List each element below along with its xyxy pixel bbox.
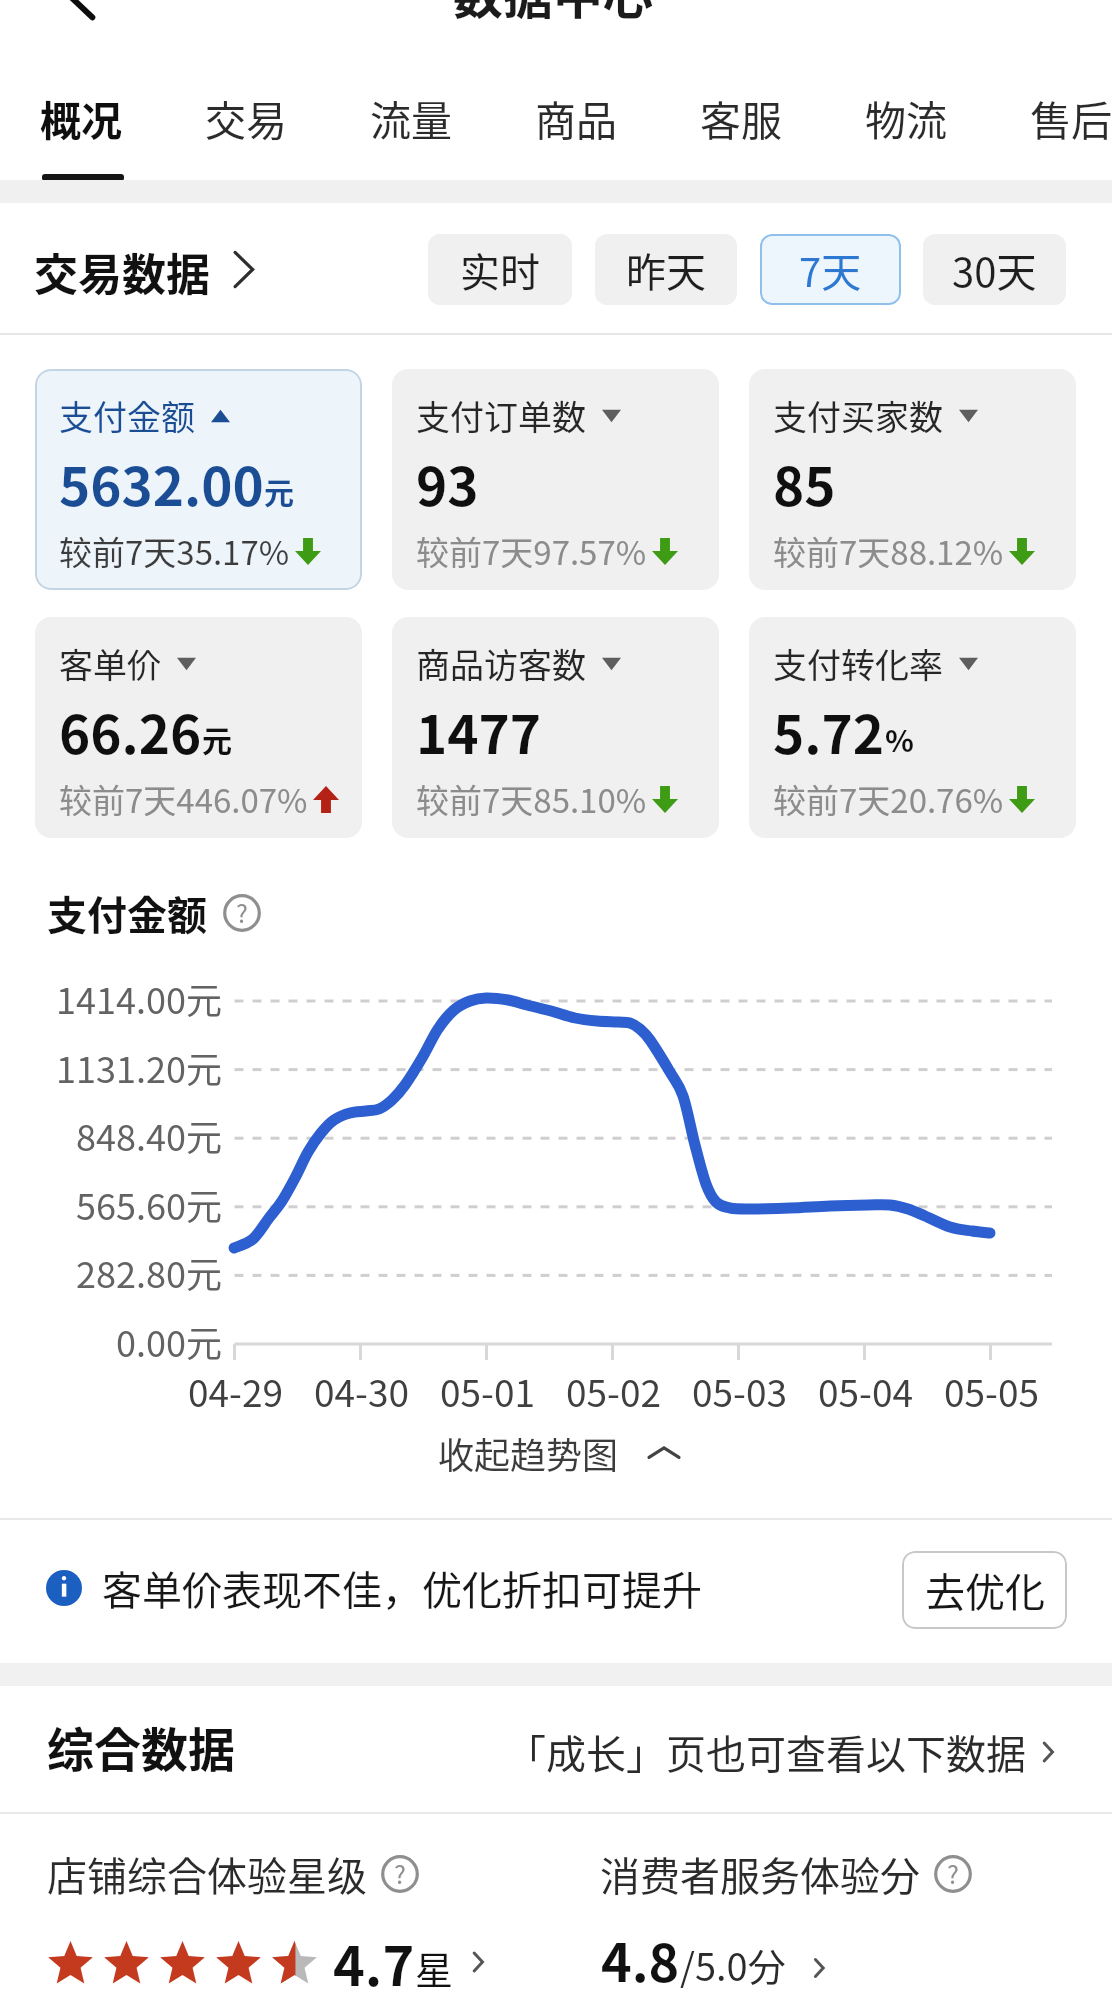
staticText: 282.80元 xyxy=(76,1246,222,1298)
button[interactable]: 交易 xyxy=(205,88,289,154)
staticText: 收起趋势图 xyxy=(438,1427,619,1479)
staticText: 1477 xyxy=(416,693,542,770)
staticText: 93 xyxy=(416,445,479,522)
button[interactable]: 综合数据 xyxy=(47,1712,235,1780)
button[interactable]: 30天 xyxy=(923,234,1066,305)
staticText: 实时 xyxy=(460,241,540,299)
staticText: 1131.20元 xyxy=(56,1041,222,1093)
staticText: /5.0分 xyxy=(680,1937,786,1992)
staticText: 0.00元 xyxy=(116,1315,222,1367)
button[interactable]: 商品 xyxy=(535,88,619,154)
button[interactable]: 客单价 xyxy=(35,617,362,838)
staticText: 7天 xyxy=(799,241,862,299)
staticText: 支付转化率 xyxy=(773,639,943,688)
staticText: 565.60元 xyxy=(76,1178,222,1230)
button[interactable]: 支付金额 xyxy=(47,884,261,942)
staticText: 客单价表现不佳，优化折扣可提升 xyxy=(102,1559,702,1617)
staticText: 4.7 xyxy=(333,1923,415,2000)
staticText: 较前7天20.76% xyxy=(773,775,1004,823)
staticText: 05-03 xyxy=(692,1364,787,1418)
button[interactable]: 商品访客数 xyxy=(392,617,719,838)
staticText: ? xyxy=(394,1855,406,1891)
staticText: 流量 xyxy=(370,88,452,147)
staticText: 交易数据 xyxy=(34,240,210,298)
staticText: 较前7天35.17% xyxy=(59,527,290,575)
staticText: 商品 xyxy=(535,88,617,147)
staticText: 05-02 xyxy=(566,1364,661,1418)
staticText: 848.40元 xyxy=(76,1109,222,1161)
button[interactable] xyxy=(600,1849,1060,1989)
button[interactable]: 概况 xyxy=(40,88,124,154)
staticText: 较前7天446.07% xyxy=(59,775,308,823)
staticText: 店铺综合体验星级 xyxy=(47,1845,367,1903)
staticText: 05-04 xyxy=(818,1364,913,1418)
staticText: 售后 xyxy=(1030,88,1112,147)
button[interactable]: 昨天 xyxy=(595,234,737,305)
staticText: 消费者服务体验分 xyxy=(600,1845,920,1903)
button[interactable]: 流量 xyxy=(370,88,454,154)
staticText: 去优化 xyxy=(925,1561,1045,1619)
staticText: 4.8 xyxy=(601,1922,680,1997)
staticText: 数据中心 xyxy=(453,0,653,28)
staticText: 较前7天97.57% xyxy=(416,527,647,575)
staticText: 支付金额 xyxy=(47,884,207,942)
staticText: 支付金额 xyxy=(59,391,195,440)
staticText: 1414.00元 xyxy=(56,972,222,1024)
staticText: 元 xyxy=(202,717,232,760)
staticText: 客服 xyxy=(700,88,782,147)
staticText: 交易 xyxy=(205,88,287,147)
button[interactable]: 交易数据 xyxy=(34,240,254,298)
staticText: 05-01 xyxy=(440,1364,535,1418)
button[interactable]: 7天 xyxy=(760,234,901,305)
button[interactable]: 去优化 xyxy=(902,1551,1067,1629)
button[interactable]: 「成长」页也可查看以下数据 xyxy=(506,1723,1064,1781)
staticText: 85 xyxy=(773,445,836,522)
button[interactable] xyxy=(47,1849,507,1989)
staticText: 66.26 xyxy=(59,693,202,770)
staticText: 物流 xyxy=(865,88,947,147)
button[interactable]: 支付订单数 xyxy=(392,369,719,590)
staticText: ? xyxy=(947,1855,959,1891)
button[interactable]: 支付买家数 xyxy=(749,369,1076,590)
staticText: 综合数据 xyxy=(47,1712,235,1780)
staticText: 04-30 xyxy=(314,1364,409,1418)
button[interactable]: 物流 xyxy=(865,88,949,154)
staticText: 支付订单数 xyxy=(416,391,586,440)
staticText: 较前7天85.10% xyxy=(416,775,647,823)
staticText: 元 xyxy=(264,469,294,512)
staticText: 较前7天88.12% xyxy=(773,527,1004,575)
staticText: ? xyxy=(236,894,248,930)
staticText: 商品访客数 xyxy=(416,639,586,688)
staticText: 5632.00 xyxy=(59,445,264,522)
button[interactable]: 售后 xyxy=(1030,88,1112,154)
button[interactable]: Back xyxy=(42,0,114,26)
button[interactable]: 客服 xyxy=(700,88,784,154)
button[interactable]: 实时 xyxy=(428,234,572,305)
staticText: 星 xyxy=(415,1940,454,1995)
button[interactable]: 收起趋势图 xyxy=(438,1425,679,1481)
staticText: 昨天 xyxy=(626,241,706,299)
staticText: 客单价 xyxy=(59,639,161,688)
staticText: 概况 xyxy=(40,88,122,147)
staticText: 05-05 xyxy=(944,1364,1039,1418)
button[interactable]: 支付转化率 xyxy=(749,617,1076,838)
staticText: 5.72 xyxy=(773,693,885,770)
staticText: 30天 xyxy=(952,241,1037,299)
staticText: 04-29 xyxy=(188,1364,283,1418)
staticText: 支付买家数 xyxy=(773,391,943,440)
button[interactable]: 支付金额 xyxy=(35,369,362,590)
staticText: 「成长」页也可查看以下数据 xyxy=(506,1723,1026,1781)
staticText: % xyxy=(885,717,914,760)
